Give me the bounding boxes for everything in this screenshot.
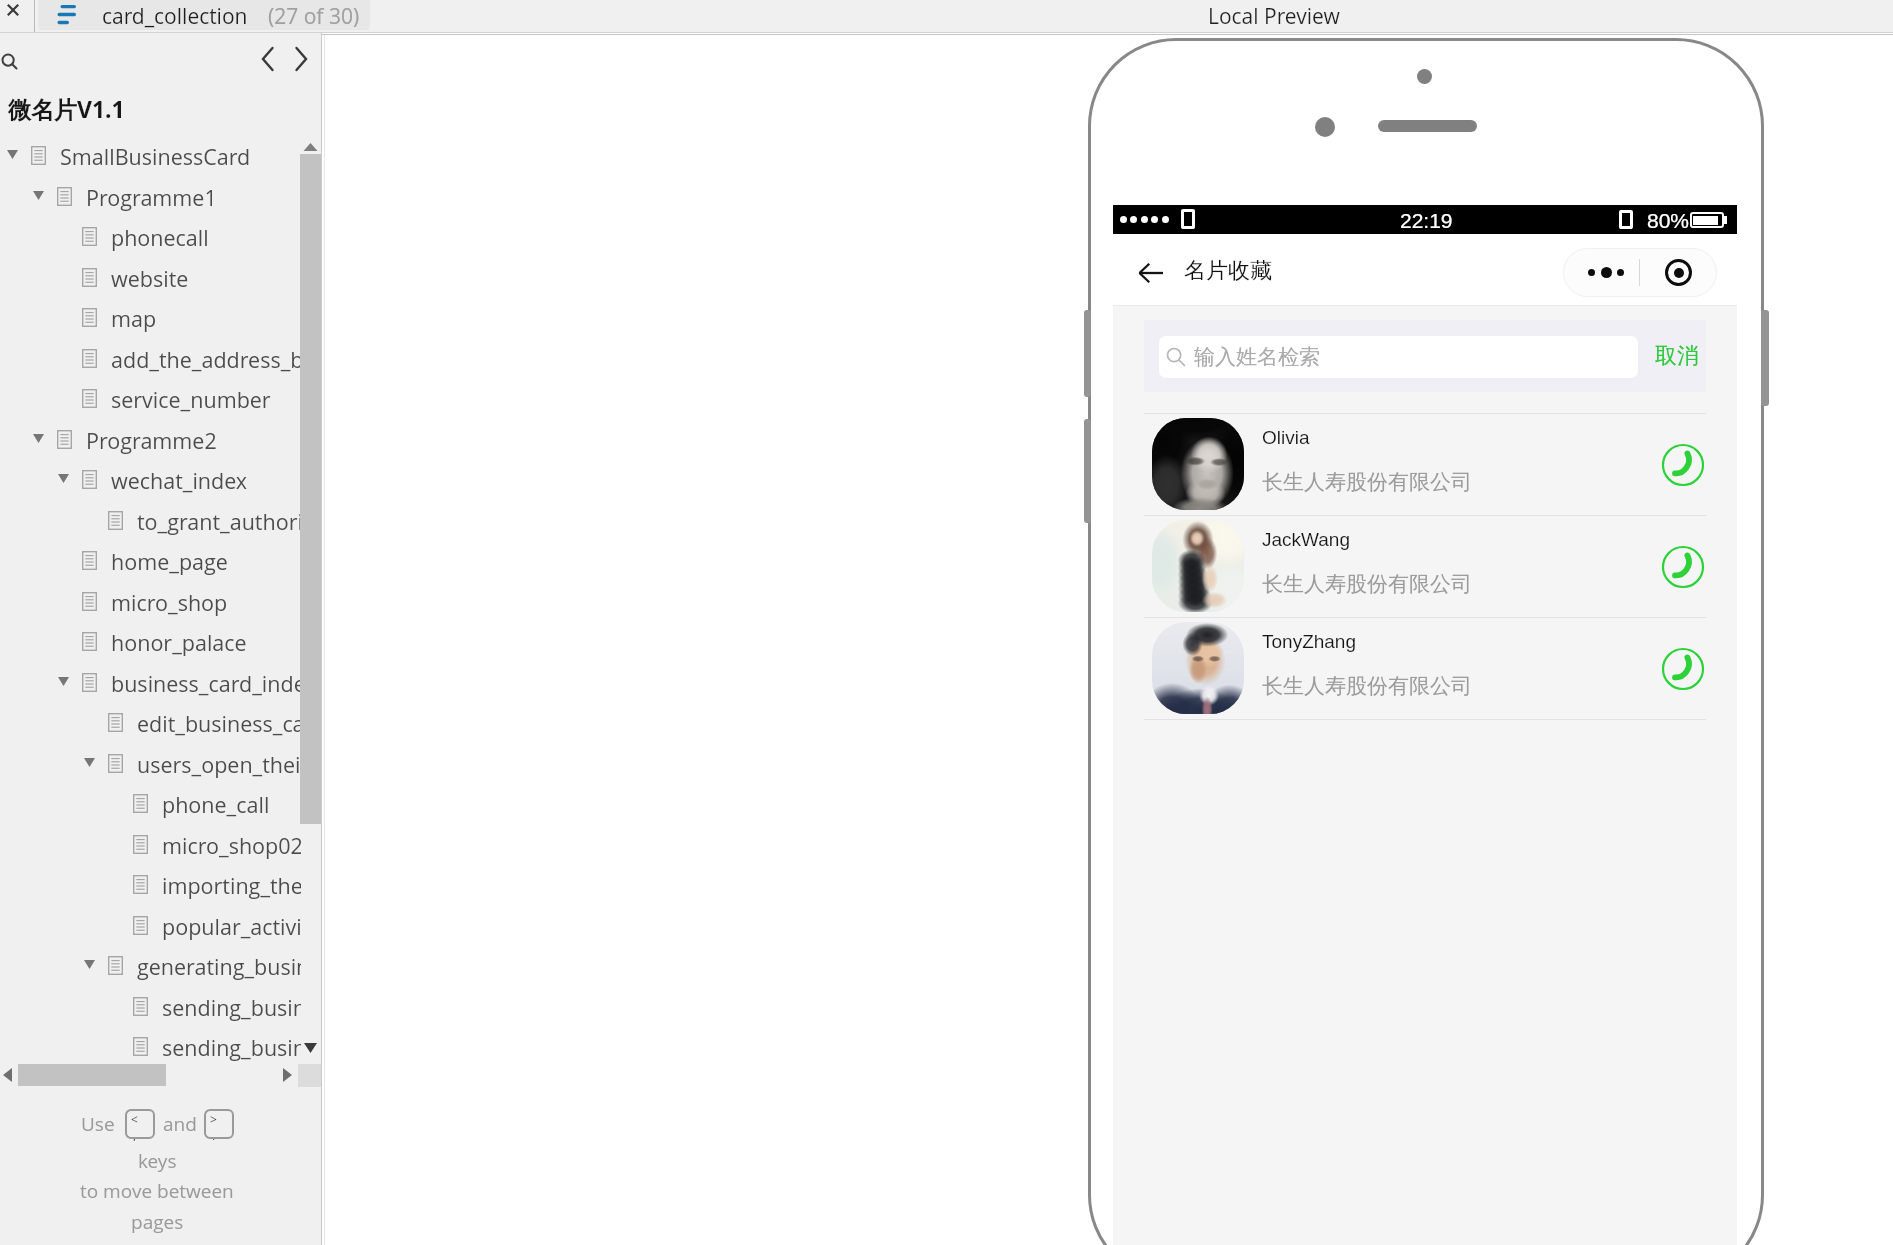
button[interactable]: Search <box>0 44 26 78</box>
staticText: importing_the_card <box>162 871 301 900</box>
staticText: and <box>163 1111 197 1137</box>
staticText: 长生人寿股份有限公司 <box>1262 571 1472 597</box>
button[interactable]: wechat_index <box>0 459 301 499</box>
staticText: to move between <box>80 1178 234 1204</box>
staticText: Olivia <box>1262 427 1310 448</box>
staticText: popular_activities <box>162 912 301 941</box>
staticText: 长生人寿股份有限公司 <box>1262 469 1472 495</box>
button[interactable]: Previous page <box>251 42 285 76</box>
staticText: service_number <box>111 385 271 414</box>
staticText: 微名片V1.1 <box>8 93 125 124</box>
staticText: home_page <box>111 547 228 576</box>
staticText: TonyZhang <box>1262 631 1357 652</box>
staticText: generating_business <box>137 952 301 981</box>
button[interactable]: Programme1 <box>0 176 301 216</box>
button[interactable]: Call Olivia <box>1661 443 1705 487</box>
staticText: edit_business_card <box>137 709 301 738</box>
staticText: sending_business_card <box>162 993 301 1022</box>
staticText: SmallBusinessCard <box>60 142 251 171</box>
button[interactable]: Close mini program <box>1640 248 1717 297</box>
button[interactable]: micro_shop <box>0 581 301 621</box>
button[interactable]: sending_business_card <box>0 986 301 1026</box>
button[interactable]: edit_business_card <box>0 702 301 742</box>
button[interactable]: sending_business_card2 <box>0 1026 301 1066</box>
button[interactable]: Programme2 <box>0 419 301 459</box>
staticText: to_grant_authorisation <box>137 507 301 536</box>
button[interactable]: TonyZhang <box>1113 617 1737 719</box>
button[interactable]: Call TonyZhang <box>1661 647 1705 691</box>
button[interactable]: 取消 <box>1648 320 1706 392</box>
staticText: add_the_address_book <box>111 345 301 374</box>
button[interactable]: card_collection <box>38 0 370 30</box>
staticText: card_collection <box>102 2 248 31</box>
staticText: Programme2 <box>86 426 217 455</box>
staticText: Programme1 <box>86 183 217 212</box>
button[interactable]: business_card_index <box>0 662 301 702</box>
button[interactable]: Call JackWang <box>1661 545 1705 589</box>
staticText: . <box>212 1127 216 1141</box>
staticText: 名片收藏 <box>1184 257 1272 285</box>
staticText: < <box>131 1111 138 1127</box>
staticText: 22:19 <box>1400 209 1453 232</box>
button[interactable]: add_the_address_book <box>0 338 301 378</box>
button[interactable]: micro_shop02 <box>0 824 301 864</box>
staticText: > <box>210 1111 217 1127</box>
button[interactable]: home_page <box>0 540 301 580</box>
button[interactable]: phone_call <box>0 783 301 823</box>
staticText: JackWang <box>1262 529 1350 550</box>
staticText: website <box>111 264 189 293</box>
button[interactable]: Next page <box>284 42 318 76</box>
staticText: wechat_index <box>111 466 248 495</box>
button[interactable]: users_open_their_card <box>0 743 301 783</box>
staticText: pages <box>131 1209 184 1235</box>
staticText: micro_shop <box>111 588 228 617</box>
staticText: 80% <box>1647 209 1690 232</box>
staticText: phonecall <box>111 223 209 252</box>
button[interactable]: importing_the_card <box>0 864 301 904</box>
staticText: micro_shop02 <box>162 831 301 860</box>
button[interactable]: SmallBusinessCard <box>0 135 301 175</box>
staticText: honor_palace <box>111 628 247 657</box>
staticText: sending_business_card2 <box>162 1033 301 1062</box>
button[interactable]: 输入姓名检索 <box>1159 336 1638 378</box>
button[interactable]: honor_palace <box>0 621 301 661</box>
button[interactable]: JackWang <box>1113 515 1737 617</box>
button[interactable]: service_number <box>0 378 301 418</box>
staticText: 取消 <box>1655 342 1699 370</box>
staticText: users_open_their_card <box>137 750 301 779</box>
staticText: map <box>111 304 157 333</box>
button[interactable]: website <box>0 257 301 297</box>
staticText: , <box>133 1127 136 1141</box>
button[interactable]: Olivia <box>1113 413 1737 515</box>
button[interactable]: map <box>0 297 301 337</box>
staticText: business_card_index <box>111 669 301 698</box>
button[interactable]: Back <box>1122 237 1178 309</box>
button[interactable]: phonecall <box>0 216 301 256</box>
button[interactable]: Close <box>0 0 34 33</box>
button[interactable]: generating_business <box>0 945 301 985</box>
staticText: (27 of 30) <box>268 2 360 31</box>
staticText: keys <box>138 1148 177 1174</box>
button[interactable]: popular_activities <box>0 905 301 945</box>
button[interactable]: More options <box>1563 248 1652 297</box>
staticText: 长生人寿股份有限公司 <box>1262 673 1472 699</box>
staticText: phone_call <box>162 790 270 819</box>
staticText: Local Preview <box>1208 2 1340 31</box>
staticText: 输入姓名检索 <box>1194 344 1320 370</box>
staticText: Use <box>81 1111 115 1137</box>
button[interactable]: to_grant_authorisation <box>0 500 301 540</box>
